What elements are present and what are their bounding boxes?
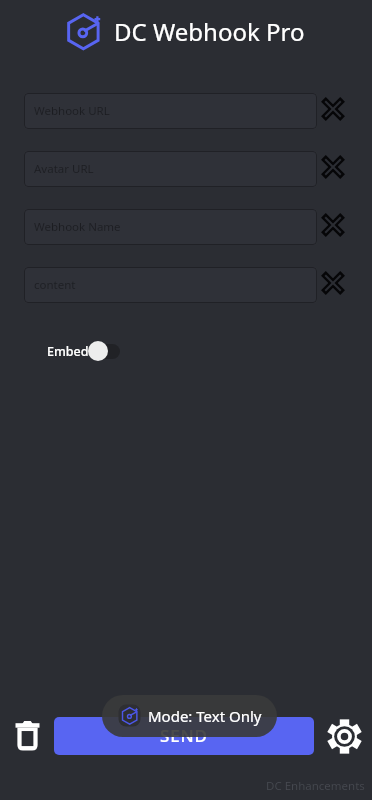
button[interactable]: Clear [317, 93, 349, 125]
button[interactable]: content [24, 267, 317, 303]
staticText: Avatar URL [34, 161, 94, 177]
button[interactable]: Clear [317, 151, 349, 183]
button[interactable]: Webhook URL [24, 93, 317, 129]
button[interactable]: Webhook Name [24, 209, 317, 245]
staticText: DC Enhancements [266, 778, 365, 794]
button[interactable] [88, 341, 120, 361]
staticText: SEND [160, 724, 208, 747]
button[interactable]: SEND [54, 717, 314, 755]
staticText: Webhook Name [34, 219, 121, 235]
button[interactable]: Clear [317, 267, 349, 299]
button[interactable]: Clear [317, 209, 349, 241]
button[interactable]: Delete [11, 720, 43, 752]
staticText: Webhook URL [34, 103, 110, 119]
staticText: DC Webhook Pro [114, 15, 305, 48]
staticText: Mode: Text Only [148, 706, 262, 726]
staticText: content [34, 277, 76, 293]
staticText: Embed [47, 343, 89, 360]
button[interactable]: Avatar URL [24, 151, 317, 187]
button[interactable]: Settings [326, 718, 362, 754]
